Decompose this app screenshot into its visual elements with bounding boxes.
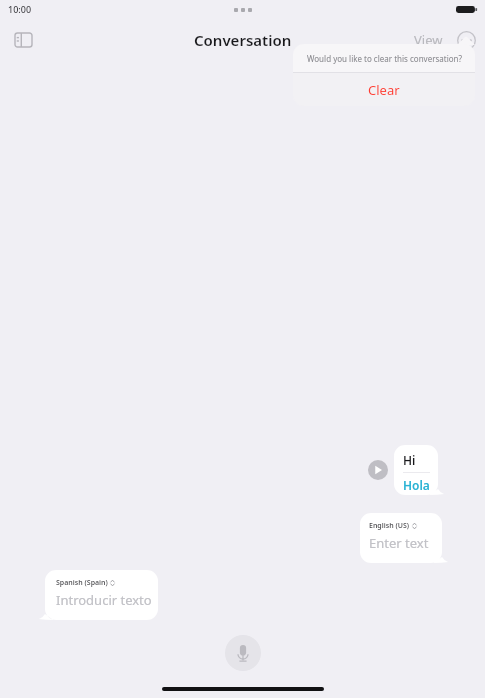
button[interactable]: Hi bbox=[394, 445, 438, 495]
button[interactable]: Toggle sidebar bbox=[8, 25, 38, 55]
button[interactable]: Clear bbox=[293, 73, 475, 106]
button[interactable]: View bbox=[410, 25, 447, 55]
button[interactable]: Play audio bbox=[368, 460, 388, 480]
staticText: Hi bbox=[403, 452, 416, 468]
staticText: Clear bbox=[368, 81, 400, 99]
staticText: Hola bbox=[403, 477, 430, 493]
staticText: Spanish (Spain) bbox=[56, 578, 108, 588]
staticText: Would you like to clear this conversatio… bbox=[307, 53, 462, 64]
staticText: Introducir texto bbox=[56, 591, 152, 609]
staticText: English (US) bbox=[369, 521, 410, 531]
staticText: 10:00 bbox=[8, 3, 32, 15]
staticText: Enter text bbox=[369, 534, 429, 552]
staticText: View bbox=[414, 31, 443, 49]
button[interactable]: English (US) bbox=[360, 513, 442, 563]
button[interactable]: More options bbox=[453, 27, 479, 53]
staticText: Conversation bbox=[194, 30, 292, 50]
button[interactable]: Spanish (Spain) bbox=[45, 570, 158, 620]
button[interactable]: Record with microphone bbox=[225, 635, 261, 671]
